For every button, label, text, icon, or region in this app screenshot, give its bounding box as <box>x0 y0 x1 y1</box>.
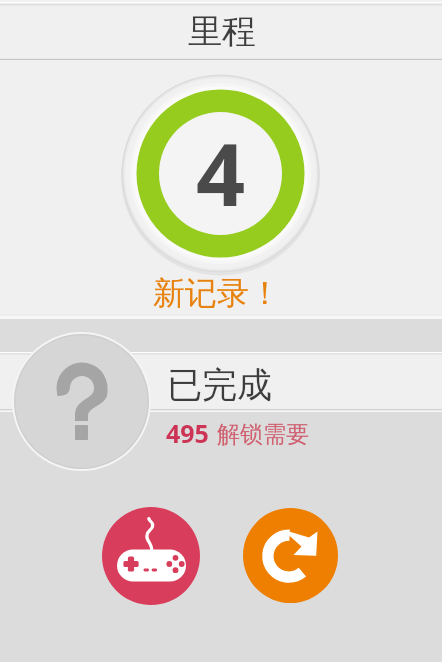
button[interactable]: Play game <box>102 507 200 605</box>
staticText: 495 <box>166 416 209 450</box>
staticText: 4 <box>196 114 246 231</box>
staticText: 已完成 <box>167 363 272 407</box>
staticText: 解锁需要 <box>217 420 309 449</box>
staticText: 里程 <box>188 10 256 53</box>
button[interactable]: Replay <box>243 508 338 603</box>
staticText: 新记录！ <box>153 273 281 313</box>
